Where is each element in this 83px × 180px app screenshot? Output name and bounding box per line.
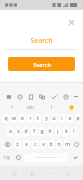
button[interactable]: w [11, 114, 17, 123]
button[interactable]: y [43, 114, 49, 123]
staticText: c [34, 141, 37, 148]
staticText: a [9, 128, 12, 135]
staticText: Search [33, 61, 51, 68]
staticText: f [33, 128, 35, 135]
button[interactable]: m [64, 140, 70, 149]
staticText: s [17, 128, 20, 135]
staticText: u [52, 115, 56, 122]
button[interactable]: z [14, 140, 21, 149]
staticText: i [61, 115, 63, 122]
button[interactable]: x [23, 140, 30, 149]
button[interactable]: Language [14, 153, 22, 162]
button[interactable]: Shift [2, 140, 12, 149]
staticText: h [48, 128, 52, 135]
staticText: l [73, 128, 75, 135]
button[interactable]: d [23, 127, 29, 136]
button[interactable]: t [35, 114, 41, 123]
button[interactable]: f [31, 127, 37, 136]
button[interactable]: Backspace [72, 140, 81, 149]
button[interactable]: Theme [25, 92, 36, 101]
staticText: t [37, 115, 39, 122]
button[interactable]: e [19, 114, 25, 123]
button[interactable]: p [75, 114, 81, 123]
staticText: ?1@ [3, 155, 11, 160]
button[interactable]: j [55, 127, 61, 136]
button[interactable]: Home [23, 166, 41, 180]
staticText: b [49, 141, 53, 148]
button[interactable]: b [48, 140, 54, 149]
button[interactable]: g [39, 127, 45, 136]
button[interactable]: l [71, 127, 77, 136]
staticText: abc [27, 104, 35, 110]
staticText: w [12, 115, 16, 122]
button[interactable]: Translate [36, 92, 48, 101]
button[interactable]: Search [0, 36, 83, 46]
button[interactable]: r [27, 114, 33, 123]
button[interactable]: Sticker [14, 92, 25, 101]
staticText: v [42, 141, 45, 148]
button[interactable]: k [63, 127, 69, 136]
button[interactable]: q [2, 114, 9, 123]
staticText: e [21, 115, 24, 122]
staticText: m [65, 141, 70, 148]
button[interactable]: Search [8, 57, 75, 71]
staticText: y [45, 115, 48, 122]
staticText: o [68, 115, 72, 122]
staticText: p [76, 115, 80, 122]
button[interactable]: s [15, 127, 21, 136]
button[interactable]: o [67, 114, 73, 123]
button[interactable]: Voice [48, 92, 60, 101]
button[interactable]: a [7, 127, 13, 136]
button[interactable]: Emoji [61, 103, 81, 111]
button[interactable]: u [51, 114, 57, 123]
button[interactable]: i [59, 114, 65, 123]
staticText: k [65, 128, 68, 135]
button[interactable]: abc [21, 103, 41, 111]
button[interactable]: Space [24, 153, 68, 162]
button[interactable]: v [40, 140, 46, 149]
button[interactable]: Settings [60, 92, 72, 101]
button[interactable]: Enter [70, 153, 81, 162]
staticText: d [24, 128, 28, 135]
staticText: r [29, 115, 32, 122]
button[interactable]: Symbols [2, 153, 12, 162]
staticText: z [16, 141, 19, 148]
staticText: j [57, 128, 59, 135]
staticText: n [57, 141, 61, 148]
staticText: q [4, 115, 8, 122]
button[interactable]: h [47, 127, 53, 136]
button[interactable]: c [32, 140, 38, 149]
staticText: g [40, 128, 44, 135]
staticText: x [25, 141, 28, 148]
button[interactable]: n [56, 140, 62, 149]
staticText: Search [30, 36, 53, 46]
button[interactable]: Clipboard [3, 92, 14, 101]
button[interactable]: Suggestion 3 [41, 103, 61, 111]
button[interactable]: Suggestion 1 [2, 103, 21, 111]
button[interactable]: Close [66, 17, 77, 28]
button[interactable]: More [72, 92, 80, 101]
